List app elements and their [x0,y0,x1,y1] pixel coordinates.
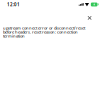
staticText: upstream connect error or disconnect/res… [3,25,85,31]
staticText: termination [3,33,25,39]
staticText: 12:01 [7,1,20,7]
button[interactable]: Close [85,13,94,23]
staticText: before headers. reset reason: connection [3,29,78,35]
